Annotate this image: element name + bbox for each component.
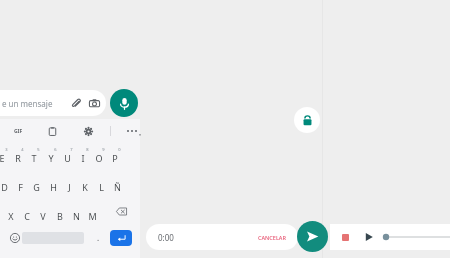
- staticText: T: [31, 152, 37, 164]
- staticText: 0:00: [158, 232, 174, 243]
- staticText: H: [50, 181, 57, 193]
- button[interactable]: Más opciones: [123, 121, 140, 141]
- staticText: 5: [37, 147, 40, 152]
- button[interactable]: M: [84, 202, 100, 224]
- button[interactable]: Borrar: [112, 202, 130, 220]
- button[interactable]: Bloquear grabación: [294, 107, 320, 133]
- staticText: G: [33, 181, 40, 193]
- staticText: P: [112, 152, 118, 164]
- button[interactable]: .: [90, 229, 106, 245]
- staticText: B: [57, 210, 63, 222]
- staticText: R: [15, 152, 21, 164]
- staticText: CANCELAR: [258, 234, 286, 241]
- button[interactable]: Portapapeles: [42, 121, 62, 141]
- button[interactable]: GIF: [8, 121, 28, 141]
- staticText: V: [40, 210, 46, 222]
- staticText: Y: [48, 152, 54, 164]
- staticText: I: [81, 152, 85, 164]
- staticText: .: [97, 232, 100, 243]
- staticText: K: [82, 181, 88, 193]
- staticText: 6: [54, 147, 57, 152]
- button[interactable]: H: [45, 173, 61, 195]
- staticText: N: [73, 210, 80, 222]
- staticText: C: [24, 210, 30, 222]
- staticText: X: [8, 210, 14, 222]
- staticText: 3: [5, 147, 8, 152]
- button[interactable]: Ñ: [109, 173, 125, 195]
- staticText: e un mensaje: [2, 98, 53, 109]
- button[interactable]: 9: [91, 144, 107, 166]
- button[interactable]: 5: [26, 144, 42, 166]
- staticText: M: [88, 210, 97, 222]
- button[interactable]: Emoji: [6, 229, 24, 247]
- staticText: F: [18, 181, 23, 193]
- button[interactable]: 7: [59, 144, 75, 166]
- button[interactable]: C: [19, 202, 35, 224]
- button[interactable]: Intro: [110, 230, 132, 246]
- button[interactable]: K: [77, 173, 93, 195]
- staticText: Ñ: [114, 181, 121, 193]
- staticText: 8: [86, 147, 89, 152]
- staticText: 7: [70, 147, 73, 152]
- button[interactable]: L: [93, 173, 109, 195]
- button[interactable]: Detener: [336, 228, 354, 246]
- button[interactable]: 0:00: [146, 224, 298, 250]
- button[interactable]: 3: [0, 144, 10, 166]
- button[interactable]: V: [35, 202, 51, 224]
- button[interactable]: e un mensaje: [0, 90, 106, 116]
- staticText: 9: [102, 147, 105, 152]
- staticText: GIF: [14, 128, 23, 135]
- button[interactable]: 0: [107, 144, 123, 166]
- button[interactable]: J: [61, 173, 77, 195]
- staticText: J: [68, 181, 71, 193]
- button[interactable]: Reproducir: [360, 228, 378, 246]
- button[interactable]: 4: [10, 144, 26, 166]
- button[interactable]: B: [52, 202, 68, 224]
- button[interactable]: Grabar mensaje de voz: [110, 89, 138, 117]
- staticText: O: [95, 152, 103, 164]
- button[interactable]: Ajustes: [78, 121, 98, 141]
- staticText: L: [99, 181, 104, 193]
- button[interactable]: 6: [43, 144, 59, 166]
- staticText: 0: [118, 147, 121, 152]
- staticText: 4: [21, 147, 24, 152]
- staticText: D: [1, 181, 8, 193]
- button[interactable]: 8: [75, 144, 91, 166]
- button[interactable]: Enviar: [297, 221, 328, 252]
- button[interactable]: [382, 228, 450, 246]
- staticText: U: [64, 152, 71, 164]
- button[interactable]: X: [3, 202, 19, 224]
- button[interactable]: G: [28, 173, 44, 195]
- button[interactable]: N: [68, 202, 84, 224]
- staticText: E: [0, 152, 5, 164]
- button[interactable]: F: [12, 173, 28, 195]
- button[interactable]: D: [0, 173, 12, 195]
